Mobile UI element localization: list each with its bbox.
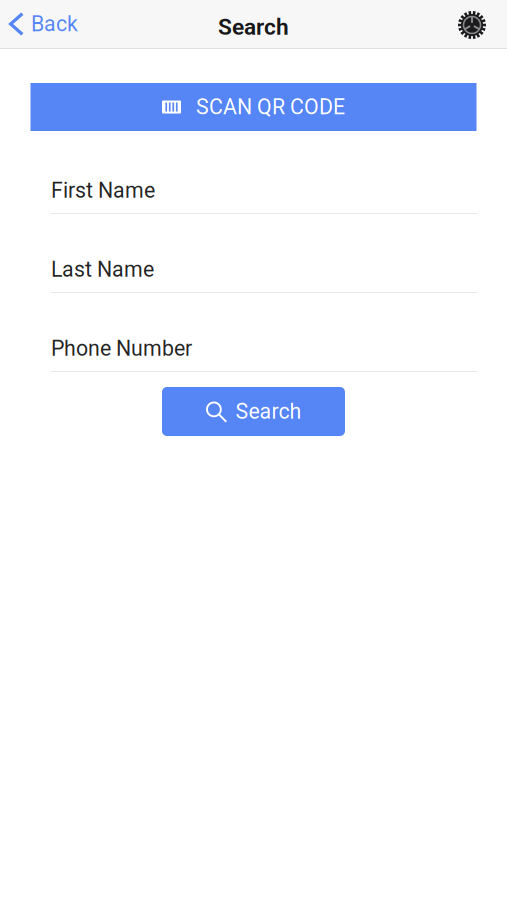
staticText: Phone Number xyxy=(51,336,192,361)
button[interactable]: SCAN QR CODE xyxy=(30,83,476,131)
staticText: Back xyxy=(31,11,78,36)
staticText: SCAN QR CODE xyxy=(196,94,345,119)
staticText: First Name xyxy=(51,178,155,203)
staticText: Last Name xyxy=(51,257,154,282)
button[interactable]: First Name xyxy=(51,161,477,214)
staticText: Search xyxy=(218,14,289,40)
button[interactable]: Last Name xyxy=(51,214,477,293)
staticText: Search xyxy=(235,399,301,424)
button[interactable]: Search xyxy=(162,387,345,436)
button[interactable]: Phone Number xyxy=(51,293,477,372)
button[interactable]: Settings xyxy=(437,0,507,48)
button[interactable]: Back xyxy=(0,0,130,48)
